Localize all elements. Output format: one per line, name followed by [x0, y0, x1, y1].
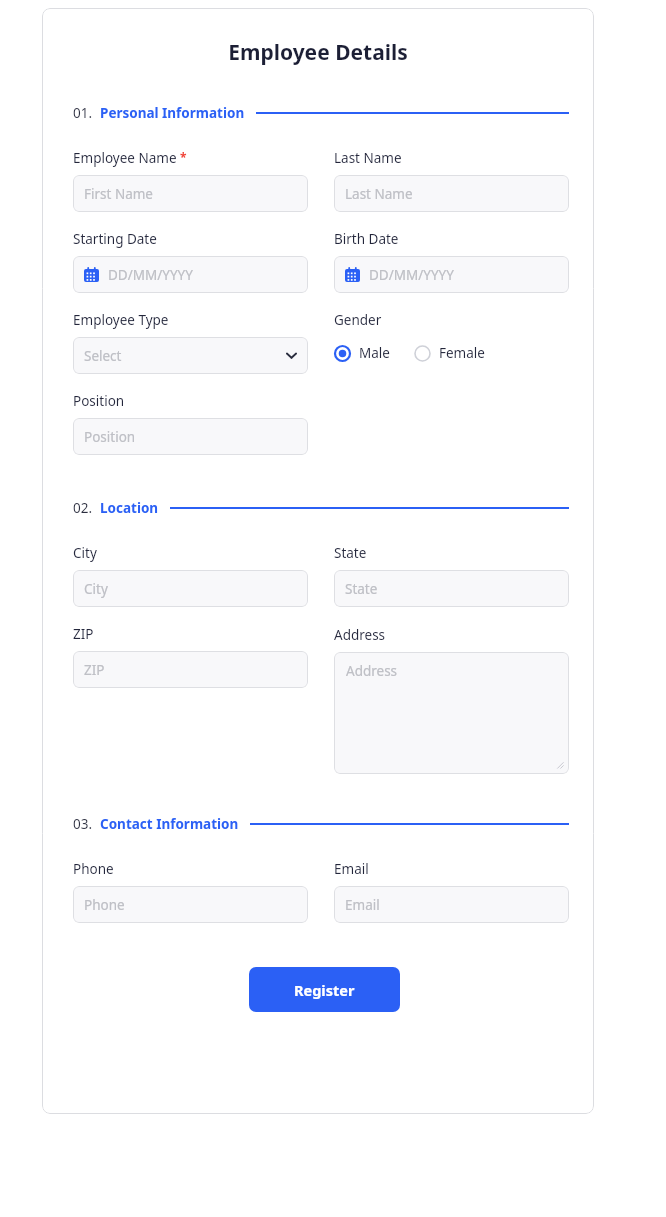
staticText: Last Name [345, 185, 558, 203]
staticText: 01. [73, 104, 93, 122]
staticText: Employee Details [42, 38, 594, 67]
staticText: Position [73, 392, 125, 410]
staticText: First Name [84, 185, 297, 203]
staticText: ZIP [73, 625, 94, 643]
staticText: 03. [73, 815, 93, 833]
button[interactable]: Female [414, 344, 485, 362]
staticText: Female [439, 344, 485, 362]
staticText: DD/MM/YYYY [108, 266, 297, 284]
staticText: Last Name [334, 149, 402, 167]
staticText: Starting Date [73, 230, 157, 248]
staticText: Email [345, 896, 558, 914]
staticText: Birth Date [334, 230, 399, 248]
staticText: City [84, 580, 297, 598]
button[interactable]: City [73, 570, 308, 607]
staticText: Employee Name [73, 149, 177, 167]
button[interactable]: Position [73, 418, 308, 455]
button[interactable]: DD/MM/YYYY [334, 256, 569, 293]
staticText: Personal Information [100, 104, 245, 122]
staticText: Email [334, 860, 369, 878]
button[interactable]: Address [334, 652, 569, 774]
staticText: * [180, 149, 187, 165]
staticText: Position [84, 428, 297, 446]
button[interactable]: ZIP [73, 651, 308, 688]
button[interactable]: State [334, 570, 569, 607]
staticText: Address [346, 662, 398, 680]
staticText: DD/MM/YYYY [369, 266, 558, 284]
button[interactable]: First Name [73, 175, 308, 212]
button[interactable]: Select [73, 337, 308, 374]
button[interactable]: Email [334, 886, 569, 923]
staticText: Phone [73, 860, 114, 878]
staticText: Phone [84, 896, 297, 914]
staticText: State [345, 580, 558, 598]
staticText: 02. [73, 499, 93, 517]
staticText: Location [100, 499, 159, 517]
staticText: ZIP [84, 661, 297, 679]
staticText: Employee Type [73, 311, 169, 329]
staticText: City [73, 544, 97, 562]
staticText: Contact Information [100, 815, 239, 833]
button[interactable]: Male [334, 344, 390, 362]
staticText: Select [84, 347, 286, 365]
staticText: Register [294, 980, 355, 1000]
button[interactable]: Register [249, 967, 400, 1012]
button[interactable]: Last Name [334, 175, 569, 212]
button[interactable]: DD/MM/YYYY [73, 256, 308, 293]
button[interactable]: Phone [73, 886, 308, 923]
staticText: Gender [334, 311, 382, 329]
staticText: Address [334, 626, 386, 644]
staticText: State [334, 544, 367, 562]
staticText: Male [359, 344, 390, 362]
